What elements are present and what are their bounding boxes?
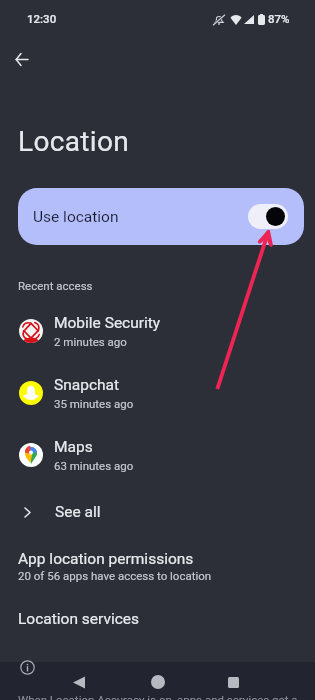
staticText: Maps bbox=[54, 438, 93, 456]
staticText: Use location bbox=[33, 208, 119, 226]
staticText: 20 of 56 apps have access to location bbox=[18, 569, 212, 582]
staticText: Snapchat bbox=[54, 376, 120, 394]
button[interactable]: Maps bbox=[0, 434, 315, 476]
staticText: When Location Accuracy is on, apps and s… bbox=[18, 693, 298, 700]
button[interactable]: Back bbox=[64, 667, 94, 697]
button[interactable]: Recent apps bbox=[218, 667, 248, 697]
staticText: Mobile Security bbox=[54, 314, 161, 332]
button[interactable]: See all bbox=[0, 494, 315, 530]
staticText: 35 minutes ago bbox=[54, 397, 134, 410]
button[interactable]: Location services bbox=[0, 605, 315, 645]
staticText: 87% bbox=[268, 12, 290, 25]
staticText: 2 minutes ago bbox=[54, 335, 127, 348]
button[interactable]: Home bbox=[143, 667, 173, 697]
button[interactable]: Use location bbox=[18, 188, 304, 245]
staticText: App location permissions bbox=[18, 550, 194, 568]
button[interactable]: Back bbox=[4, 42, 39, 77]
staticText: See all bbox=[55, 503, 101, 521]
button[interactable]: App location permissions bbox=[0, 545, 315, 593]
staticText: Recent access bbox=[18, 279, 93, 292]
staticText: 12:30 bbox=[27, 12, 57, 25]
button[interactable]: Mobile Security bbox=[0, 310, 315, 352]
staticText: Location services bbox=[18, 610, 140, 628]
staticText: Location bbox=[18, 125, 130, 158]
staticText: 63 minutes ago bbox=[54, 459, 134, 472]
button[interactable]: Snapchat bbox=[0, 372, 315, 414]
